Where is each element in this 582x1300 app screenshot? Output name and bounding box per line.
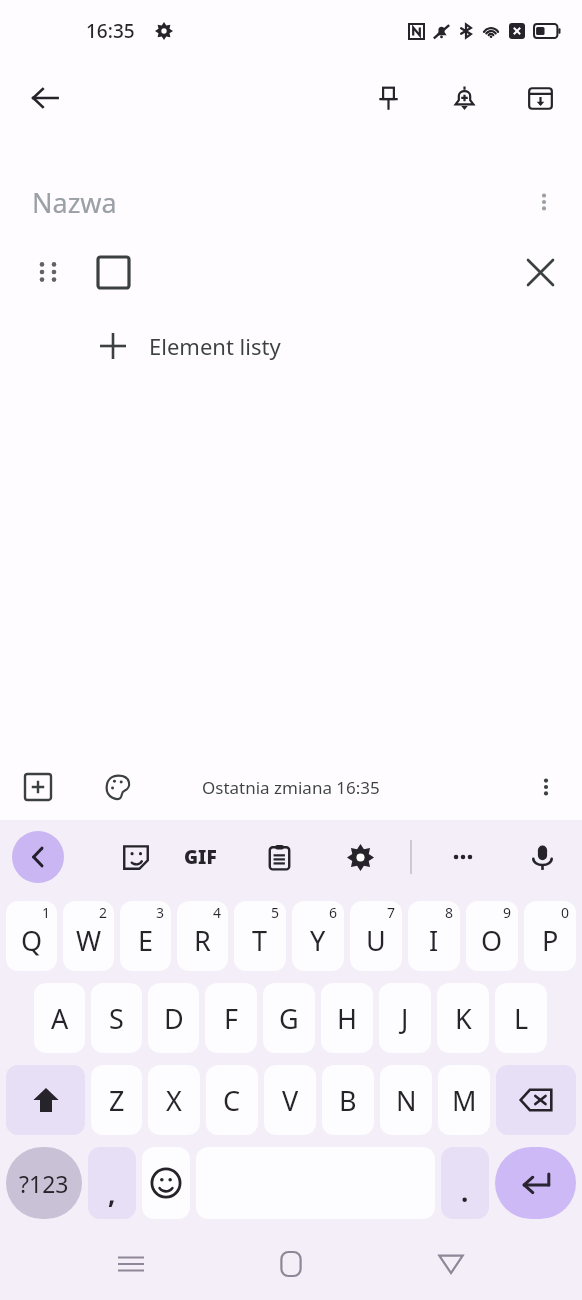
button[interactable]: Background options — [92, 761, 144, 813]
button[interactable]: J — [379, 983, 431, 1053]
button[interactable]: Collapse toolbar — [12, 831, 64, 883]
staticText: Z — [109, 1082, 125, 1119]
button[interactable]: Q — [6, 901, 57, 971]
button[interactable]: Recent apps — [102, 1235, 160, 1293]
staticText: I — [429, 922, 439, 959]
staticText: L — [514, 1000, 529, 1037]
staticText: E — [138, 922, 154, 959]
staticText: U — [366, 922, 386, 959]
staticText: F — [224, 1000, 239, 1037]
staticText: 3 — [156, 903, 165, 922]
staticText: ?123 — [19, 1168, 69, 1199]
staticText: O — [481, 922, 503, 959]
button[interactable]: Voice input — [518, 833, 566, 881]
button[interactable]: C — [206, 1065, 258, 1135]
button[interactable]: Settings — [337, 834, 383, 880]
button[interactable]: Delete item — [514, 248, 566, 296]
button[interactable]: L — [495, 983, 547, 1053]
button[interactable]: Back — [422, 1235, 480, 1293]
staticText: 9 — [503, 903, 512, 922]
button[interactable]: . — [441, 1147, 489, 1219]
button[interactable]: More tools — [440, 834, 486, 880]
button[interactable]: Element listy — [0, 320, 582, 372]
staticText: G — [279, 1000, 299, 1037]
button[interactable]: T — [234, 901, 286, 971]
button[interactable]: ?123 — [6, 1147, 82, 1219]
staticText: D — [164, 1000, 184, 1037]
staticText: 7 — [387, 903, 396, 922]
button[interactable]: Pin — [362, 72, 414, 124]
button[interactable]: K — [437, 983, 489, 1053]
button[interactable]: A — [34, 983, 85, 1053]
staticText: , — [108, 1176, 116, 1211]
button[interactable]: S — [91, 983, 142, 1053]
button[interactable]: F — [205, 983, 257, 1053]
staticText: S — [109, 1000, 124, 1037]
button[interactable]: Shift — [6, 1065, 85, 1135]
staticText: B — [339, 1082, 357, 1119]
button[interactable]: P — [524, 901, 576, 971]
button[interactable]: Backspace — [496, 1065, 576, 1135]
staticText: A — [51, 1000, 69, 1037]
button[interactable]: Checkbox — [84, 248, 142, 296]
staticText: H — [337, 1000, 358, 1037]
button[interactable]: W — [63, 901, 114, 971]
button[interactable]: I — [408, 901, 460, 971]
button[interactable]: Back — [18, 71, 72, 125]
staticText: P — [542, 922, 559, 959]
button[interactable]: V — [264, 1065, 316, 1135]
button[interactable]: M — [438, 1065, 490, 1135]
button[interactable]: D — [148, 983, 199, 1053]
staticText: 4 — [213, 903, 222, 922]
button[interactable]: Clipboard — [256, 834, 302, 880]
button[interactable]: More options — [520, 178, 568, 226]
staticText: 0 — [561, 903, 570, 922]
staticText: 1 — [42, 903, 51, 922]
button[interactable]: Z — [91, 1065, 142, 1135]
staticText: 2 — [99, 903, 108, 922]
button[interactable]: Add — [12, 761, 64, 813]
button[interactable]: O — [466, 901, 518, 971]
button[interactable]: Stickers — [113, 834, 159, 880]
button[interactable]: R — [177, 901, 228, 971]
staticText: GIF — [184, 844, 217, 870]
button[interactable]: N — [380, 1065, 432, 1135]
button[interactable]: GIF — [175, 832, 225, 882]
button[interactable]: H — [321, 983, 373, 1053]
button[interactable]: Archive — [514, 72, 566, 124]
staticText: Element listy — [149, 331, 281, 361]
staticText: M — [452, 1082, 477, 1119]
button[interactable]: Reminder — [438, 72, 490, 124]
button[interactable]: Home — [262, 1235, 320, 1293]
staticText: X — [166, 1082, 182, 1119]
staticText: 6 — [329, 903, 338, 922]
staticText: Nazwa — [32, 184, 117, 221]
button[interactable]: Y — [292, 901, 344, 971]
button[interactable]: , — [88, 1147, 136, 1219]
staticText: J — [401, 1000, 409, 1037]
staticText: 16:35 — [86, 18, 135, 44]
staticText: 5 — [271, 903, 280, 922]
button[interactable]: E — [120, 901, 171, 971]
staticText: R — [194, 922, 211, 959]
staticText: W — [76, 922, 102, 959]
staticText: N — [396, 1082, 417, 1119]
staticText: . — [461, 1174, 469, 1209]
other: Drag — [38, 262, 58, 282]
staticText: C — [223, 1082, 241, 1119]
staticText: Y — [310, 922, 326, 959]
staticText: T — [252, 922, 268, 959]
button[interactable]: U — [350, 901, 402, 971]
staticText: V — [282, 1082, 299, 1119]
staticText: Ostatnia zmiana 16:35 — [202, 776, 380, 799]
button[interactable]: X — [148, 1065, 200, 1135]
button[interactable]: G — [263, 983, 315, 1053]
staticText: Q — [21, 922, 43, 959]
button[interactable]: Enter — [495, 1147, 576, 1219]
button[interactable]: B — [322, 1065, 374, 1135]
button[interactable]: Emoji — [142, 1147, 190, 1219]
staticText: K — [455, 1000, 472, 1037]
staticText: 8 — [445, 903, 454, 922]
button[interactable]: More — [520, 761, 572, 813]
